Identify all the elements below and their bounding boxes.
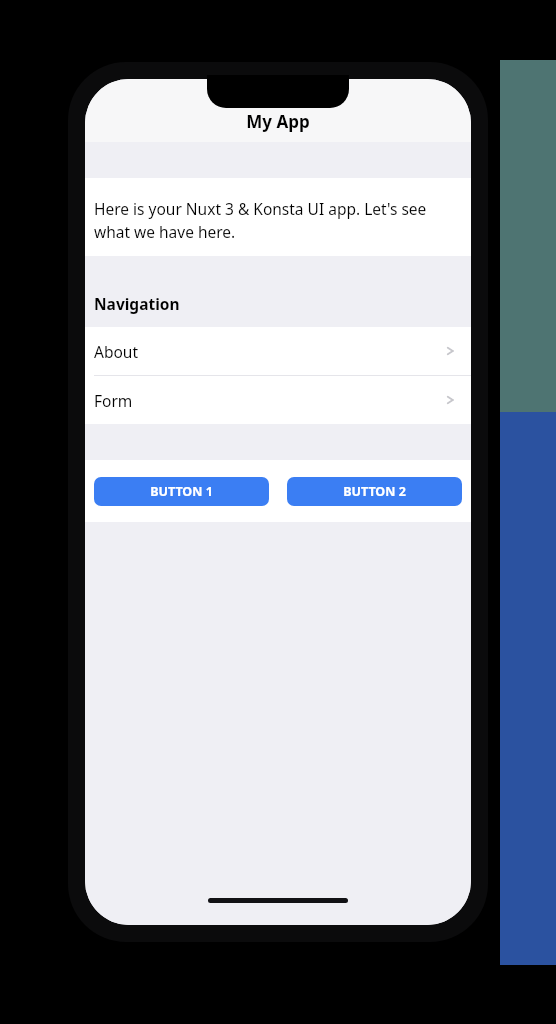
staticText: About xyxy=(94,341,443,362)
staticText: Form xyxy=(94,390,443,411)
staticText: BUTTON 1 xyxy=(150,483,213,500)
button[interactable]: BUTTON 2 xyxy=(287,477,462,506)
button[interactable]: Form xyxy=(85,376,471,424)
button[interactable]: About xyxy=(85,327,471,375)
staticText: My App xyxy=(246,110,310,133)
button[interactable]: BUTTON 1 xyxy=(94,477,269,506)
staticText: Navigation xyxy=(94,293,180,314)
staticText: Here is your Nuxt 3 & Konsta UI app. Let… xyxy=(94,198,457,243)
staticText: BUTTON 2 xyxy=(343,483,406,500)
